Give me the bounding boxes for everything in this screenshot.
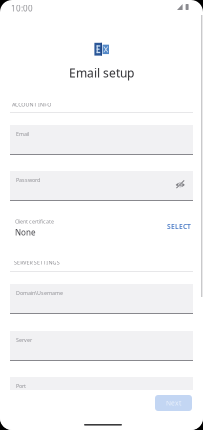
- button[interactable]: SELECT: [167, 222, 197, 231]
- button[interactable]: Next: [155, 395, 192, 411]
- staticText: None: [15, 227, 36, 238]
- button[interactable]: Server: [10, 331, 193, 361]
- staticText: Port: [16, 382, 26, 390]
- staticText: Domain\Username: [16, 289, 63, 297]
- button[interactable]: Client certificate: [15, 218, 145, 225]
- staticText: Server: [16, 336, 32, 344]
- button[interactable]: None: [15, 227, 145, 238]
- button[interactable]: Port: [10, 377, 193, 407]
- button[interactable]: Password: [10, 171, 193, 201]
- staticText: SERVER SETTINGS: [14, 259, 60, 266]
- staticText: Client certificate: [15, 218, 54, 225]
- staticText: Next: [166, 399, 181, 407]
- staticText: Email setup: [69, 65, 134, 81]
- staticText: Email: [16, 130, 29, 138]
- staticText: Password: [16, 176, 40, 184]
- staticText: SELECT: [167, 222, 191, 231]
- staticText: 10:00: [11, 3, 33, 14]
- button[interactable]: Domain\Username: [10, 284, 193, 314]
- staticText: ACCOUNT INFO: [12, 101, 51, 108]
- button[interactable]: Email: [10, 125, 193, 155]
